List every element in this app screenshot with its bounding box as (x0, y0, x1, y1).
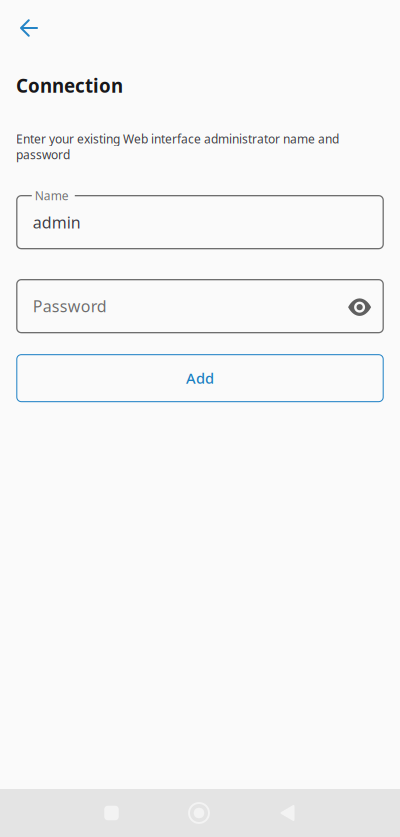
button[interactable]: Back (6, 5, 52, 51)
button[interactable]: Recent apps (68, 789, 155, 837)
button[interactable]: Show password (339, 285, 381, 327)
button[interactable]: Home (155, 789, 243, 837)
staticText: admin (33, 212, 81, 233)
staticText: Name (35, 188, 69, 204)
staticText: Connection (16, 73, 123, 98)
staticText: Add (186, 368, 214, 388)
staticText: Password (33, 295, 107, 317)
staticText: Enter your existing Web interface admini… (16, 131, 339, 163)
button[interactable]: Add (17, 355, 383, 402)
